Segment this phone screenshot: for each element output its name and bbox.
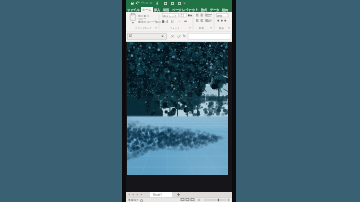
staticText: データ xyxy=(210,8,220,12)
button[interactable]: ページ レイアウト xyxy=(171,7,200,12)
staticText: 校閲 xyxy=(222,8,229,12)
button[interactable]: Photo in spreadsheet xyxy=(127,42,228,175)
button[interactable] xyxy=(126,0,232,7)
button[interactable]: 切り取り xyxy=(138,14,150,17)
staticText: 準備完了 xyxy=(128,198,139,201)
button[interactable]: データ xyxy=(209,7,221,12)
button[interactable]: 挿入 xyxy=(153,7,162,12)
staticText: 標準 xyxy=(217,14,223,17)
button[interactable]: ホーム xyxy=(141,7,153,12)
staticText: ファイル xyxy=(127,8,140,12)
staticText: 11 xyxy=(181,14,185,18)
staticText: fx xyxy=(183,34,186,38)
staticText: U xyxy=(171,19,174,24)
staticText: 書式のコピー/貼り付け xyxy=(138,20,168,23)
staticText: I xyxy=(167,19,169,24)
staticText: 切り取り xyxy=(138,14,150,17)
staticText: B xyxy=(162,19,165,24)
staticText: コピー xyxy=(138,17,147,20)
button[interactable]: ファイル xyxy=(126,7,141,12)
staticText: Sheet1 xyxy=(153,193,162,197)
staticText: 游ゴシック xyxy=(163,14,177,17)
staticText: クリップボード xyxy=(135,27,153,30)
button[interactable]: 数式 xyxy=(200,7,209,12)
button[interactable]: コピー xyxy=(138,17,147,20)
button[interactable]: 校閲 xyxy=(221,7,230,12)
staticText: 数値 xyxy=(219,27,224,30)
staticText: 挿入 xyxy=(154,8,161,12)
staticText: フォント xyxy=(170,27,180,30)
staticText: 描画 xyxy=(163,8,170,12)
staticText: ページ レイアウト xyxy=(172,8,199,12)
button[interactable]: 描画 xyxy=(162,7,171,12)
staticText: 配置 xyxy=(199,27,204,30)
staticText: ホーム xyxy=(142,8,152,12)
button[interactable]: 書式のコピー/貼り付け xyxy=(138,20,168,23)
staticText: 数式 xyxy=(201,8,208,12)
staticText: A1 xyxy=(129,34,133,38)
